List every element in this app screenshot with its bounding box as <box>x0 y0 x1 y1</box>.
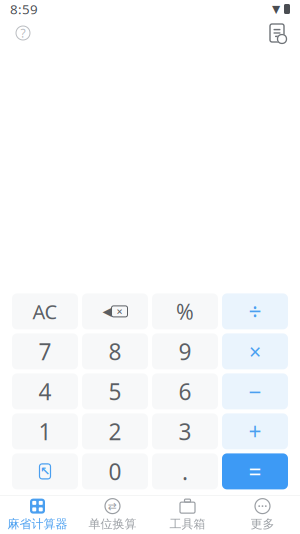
button[interactable]: Hide keypad <box>12 453 78 489</box>
button[interactable]: 1 <box>12 413 78 449</box>
button[interactable]: = <box>222 453 288 489</box>
button[interactable]: − <box>222 373 288 409</box>
button[interactable]: 麻省计算器 <box>0 496 75 534</box>
button[interactable]: × <box>222 333 288 369</box>
staticText: + <box>248 416 261 446</box>
staticText: 7 <box>38 336 51 366</box>
staticText: ⇄ <box>108 500 117 512</box>
button[interactable]: 6 <box>152 373 218 409</box>
staticText: − <box>248 376 261 406</box>
staticText: 麻省计算器 <box>7 517 67 531</box>
staticText: 更多 <box>250 517 274 531</box>
staticText: 5 <box>108 376 121 406</box>
staticText: 8 <box>108 336 121 366</box>
staticText: ↖ <box>40 465 50 478</box>
button[interactable]: 9 <box>152 333 218 369</box>
staticText: 2 <box>108 416 121 446</box>
staticText: 3 <box>178 416 191 446</box>
button[interactable]: 7 <box>12 333 78 369</box>
staticText: 1 <box>38 416 51 446</box>
staticText: 0 <box>108 456 121 486</box>
staticText: × <box>116 304 122 318</box>
staticText: 9 <box>178 336 191 366</box>
button[interactable]: Help <box>6 18 40 48</box>
button[interactable]: . <box>152 453 218 489</box>
button[interactable]: ÷ <box>222 293 288 329</box>
button[interactable]: 0 <box>82 453 148 489</box>
staticText: . <box>182 456 188 486</box>
button[interactable]: 更多 <box>225 496 300 534</box>
button[interactable]: History <box>260 18 294 48</box>
staticText: % <box>176 297 194 325</box>
staticText: 4 <box>38 376 51 406</box>
staticText: 单位换算 <box>88 517 136 531</box>
button[interactable]: % <box>152 293 218 329</box>
button[interactable]: 3 <box>152 413 218 449</box>
button[interactable]: ⇄ <box>75 496 150 534</box>
button[interactable]: + <box>222 413 288 449</box>
button[interactable]: 5 <box>82 373 148 409</box>
button[interactable]: 4 <box>12 373 78 409</box>
staticText: 6 <box>178 376 191 406</box>
staticText: ? <box>20 25 25 41</box>
staticText: ▼ <box>272 3 280 15</box>
staticText: AC <box>32 298 57 325</box>
staticText: = <box>248 456 261 486</box>
staticText: × <box>249 337 261 365</box>
staticText: ÷ <box>248 296 261 326</box>
staticText: ◀ <box>102 305 111 318</box>
button[interactable]: 2 <box>82 413 148 449</box>
button[interactable]: 8 <box>82 333 148 369</box>
button[interactable]: Backspace <box>82 293 148 329</box>
button[interactable]: AC <box>12 293 78 329</box>
staticText: 工具箱 <box>169 517 205 531</box>
staticText: 8:59 <box>10 0 38 18</box>
button[interactable]: 工具箱 <box>150 496 225 534</box>
